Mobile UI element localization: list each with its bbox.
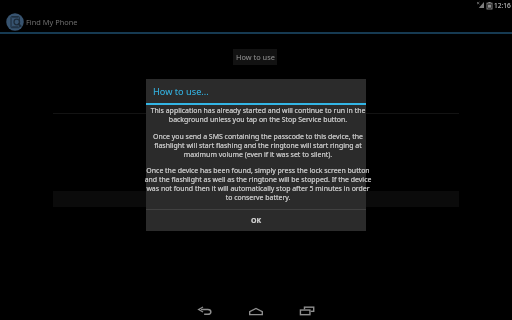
button[interactable]: Recent apps: [283, 299, 331, 320]
button[interactable]: How to use: [233, 49, 277, 65]
staticText: Find My Phone: [26, 17, 78, 27]
staticText: How to use...: [153, 85, 209, 98]
staticText: This application has already started and…: [142, 106, 374, 124]
staticText: 12:16: [494, 1, 511, 10]
staticText: Once the device has been found, simply p…: [142, 166, 374, 202]
staticText: Once you send a SMS containing the passc…: [142, 132, 374, 159]
staticText: OK: [251, 216, 262, 226]
button[interactable]: Back: [181, 299, 229, 320]
staticText: How to use: [236, 52, 275, 62]
button[interactable]: OK: [146, 210, 366, 231]
button[interactable]: Home: [232, 299, 280, 320]
